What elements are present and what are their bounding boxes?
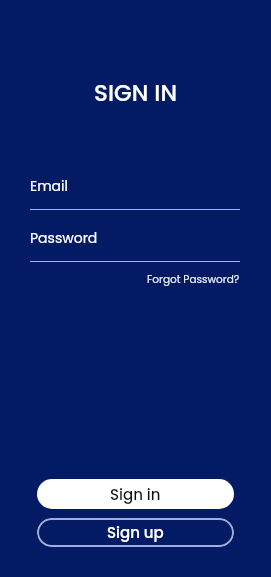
button[interactable]: Sign up <box>37 518 234 547</box>
staticText: Email <box>30 176 68 196</box>
staticText: Password <box>30 228 98 248</box>
button[interactable]: Forgot Password? <box>147 272 240 287</box>
button[interactable]: Password <box>30 228 240 262</box>
button[interactable]: Email <box>30 176 240 210</box>
staticText: SIGN IN <box>0 77 271 109</box>
button[interactable]: Sign in <box>37 479 234 509</box>
staticText: Sign up <box>107 522 164 543</box>
staticText: Sign in <box>110 484 161 505</box>
